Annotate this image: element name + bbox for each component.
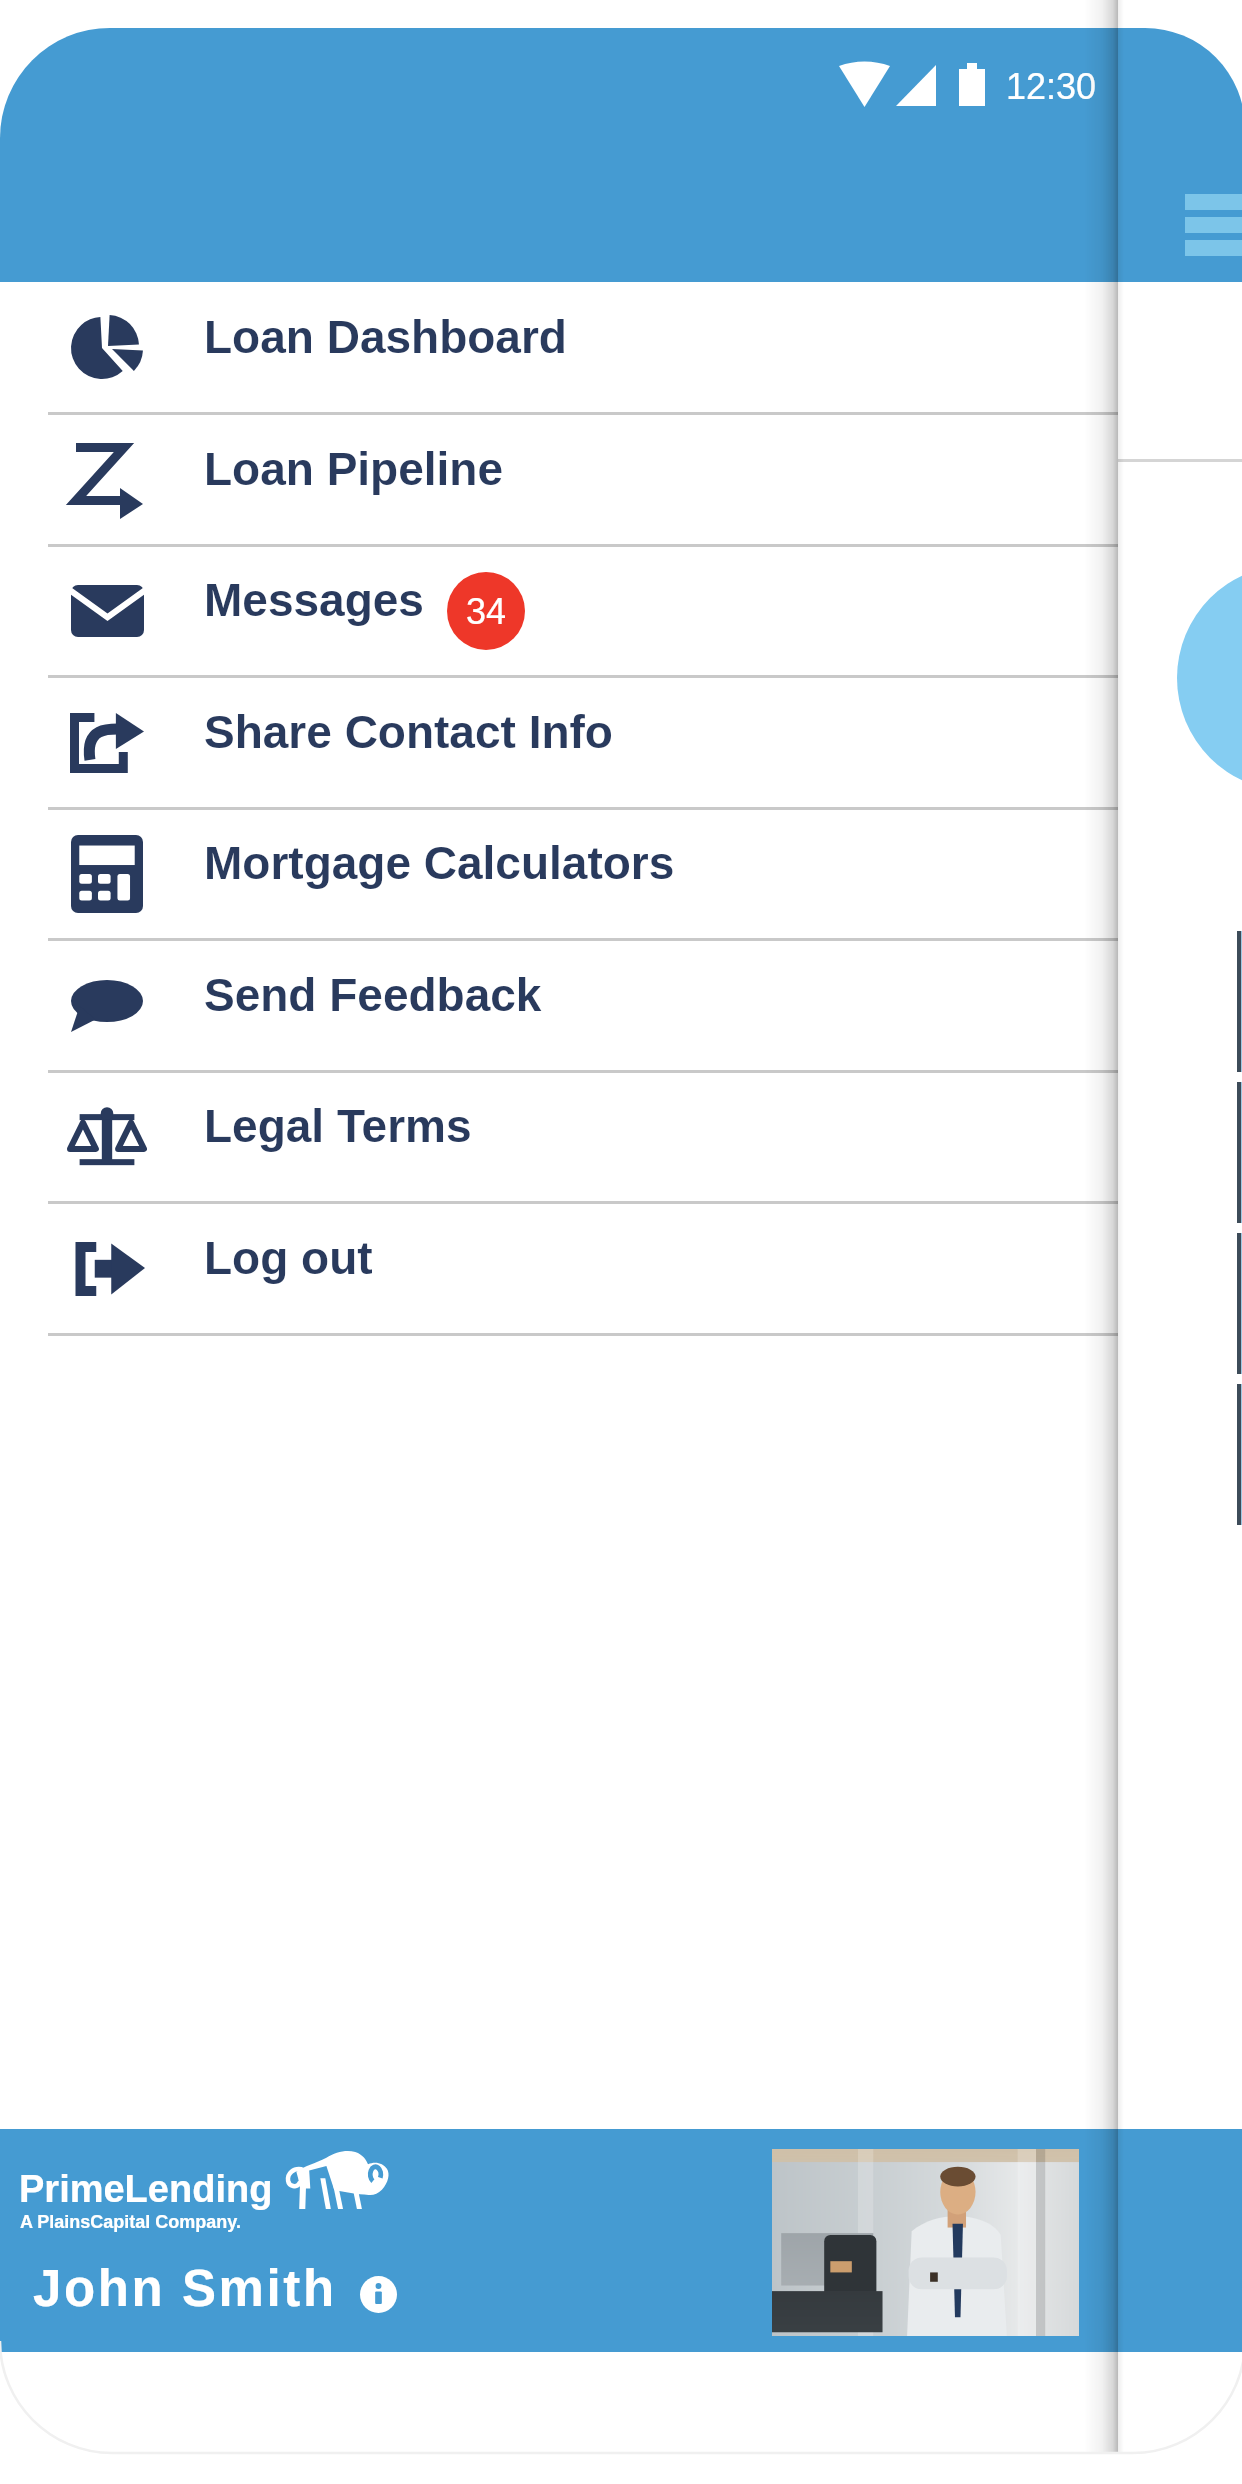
staticText: PrimeLending <box>19 2168 273 2210</box>
staticText: Legal Terms <box>204 1100 472 1151</box>
button[interactable]: Loan Dashboard <box>0 282 1118 414</box>
staticText: Mortgage Calculators <box>204 837 675 888</box>
staticText: Share Contact Info <box>204 706 613 757</box>
staticText: Send Feedback <box>204 969 542 1020</box>
button[interactable]: Legal Terms <box>0 1071 1118 1203</box>
button[interactable]: Loan Pipeline <box>0 414 1118 546</box>
button[interactable]: Send Feedback <box>0 940 1118 1072</box>
button[interactable]: Share Contact Info <box>0 677 1118 809</box>
staticText: 12:30 <box>1006 66 1097 106</box>
button[interactable]: Log out <box>0 1203 1118 1335</box>
staticText: Messages <box>204 574 424 625</box>
button[interactable]: Messages <box>0 545 1118 677</box>
button[interactable]: Mortgage Calculators <box>0 808 1118 940</box>
staticText: John Smith <box>33 2260 337 2317</box>
button[interactable]: Account info <box>360 2276 397 2313</box>
staticText: A PlainsCapital Company. <box>20 2212 242 2232</box>
staticText: 34 <box>466 591 507 631</box>
staticText: Loan Pipeline <box>204 443 504 494</box>
staticText: Log out <box>204 1232 373 1283</box>
staticText: Loan Dashboard <box>204 311 567 362</box>
